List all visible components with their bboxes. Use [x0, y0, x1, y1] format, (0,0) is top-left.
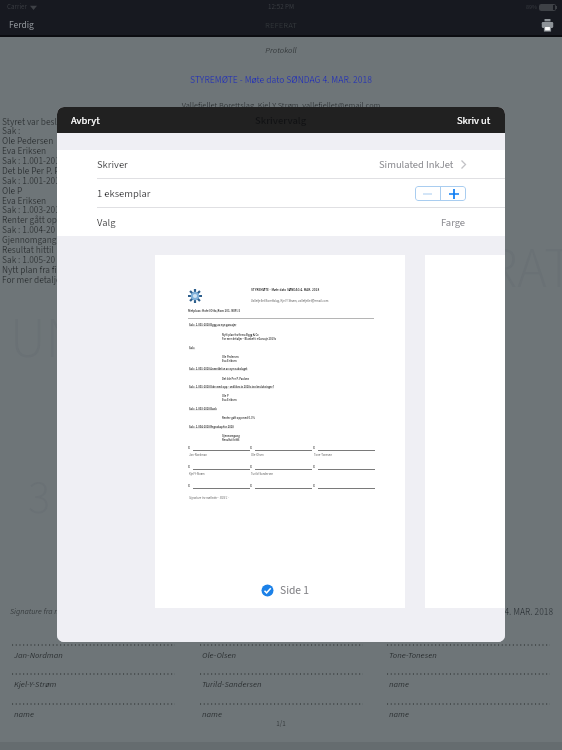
staticText: Sak : 1.004-20: [2, 223, 56, 236]
staticText: Sak : 1.001-201: [2, 154, 60, 167]
staticText: Sak :: [189, 346, 196, 350]
staticText: STYREMØTE - Møte dato SØNDAG 4. MAR. 201…: [251, 288, 320, 293]
staticText: Gjennomgang: [2, 233, 57, 246]
staticText: STYREMØTE - Møte dato SØNDAG 4. MAR. 201…: [0, 605, 553, 618]
staticText: Ole P: [2, 184, 23, 197]
staticText: Tone-Tonesen: [389, 649, 437, 661]
staticText: X: [313, 465, 315, 470]
staticText: X: [250, 446, 252, 451]
staticText: Ole-Olsen: [202, 649, 237, 661]
staticText: Jan-Nordman: [14, 649, 63, 661]
staticText: STYREMØTE - Møte dato SØNDAG 4. MAR. 201…: [0, 73, 562, 87]
staticText: Eva Eriksen: [222, 398, 237, 402]
staticText: Sak : 1.001-2018 Bygg av nye garasjer: [189, 323, 237, 327]
staticText: Gjennomgang: [222, 434, 240, 438]
staticText: Renter gått opp: [2, 213, 63, 226]
staticText: Det ble Per P. Paulsen: [222, 377, 250, 381]
staticText: Sak : 1.003-201: [2, 203, 60, 216]
button[interactable]: Avbryt: [57, 108, 114, 133]
staticText: Valg: [97, 215, 116, 230]
staticText: X: [188, 484, 190, 489]
staticText: Kjel-Y-Strøm: [189, 472, 205, 476]
staticText: Tone-Tonesen: [314, 453, 333, 457]
staticText: X: [250, 465, 252, 470]
staticText: 1 eksemplar: [97, 186, 151, 201]
staticText: Ole P: [222, 394, 229, 398]
staticText: Farge: [441, 215, 466, 230]
staticText: Vallefjellet Borettslag, Kjel Y Strøm, v…: [251, 299, 329, 304]
staticText: name: [202, 708, 223, 720]
staticText: 89%: [526, 3, 537, 12]
staticText: Avbryt: [71, 113, 100, 128]
staticText: Turild-Sandersen: [202, 678, 262, 690]
staticText: Eva Eriksen: [2, 144, 47, 157]
staticText: Simulated InkJet: [379, 157, 454, 172]
staticText: Resultat hittil: [2, 243, 54, 256]
button[interactable]: Decrease copies: [415, 186, 440, 201]
staticText: Sak : 1.004-2018 Regnskap for 2018: [189, 425, 234, 429]
staticText: REFERAT: [265, 19, 297, 31]
staticText: Det ble Per P. P: [2, 164, 60, 177]
button[interactable]: Valg: [57, 208, 505, 236]
staticText: Carrier: [7, 2, 28, 12]
staticText: Vallefjellet Borettslag, Kjel Y Strøm, v…: [0, 100, 562, 112]
button[interactable]: Print: [533, 19, 562, 31]
staticText: Renter gått opp med 0.3%: [222, 416, 255, 420]
staticText: Sak :: [2, 124, 21, 137]
staticText: Sak : 1.001-2018 Anmeldelse av nye nabol…: [189, 367, 248, 371]
staticText: Signature fra møtleder - SIDE 1 -: [189, 496, 230, 500]
staticText: REFERAT: [372, 230, 562, 310]
staticText: Metplass: Hotel Otto,Rom 101. WIFI-5: [188, 309, 241, 314]
staticText: Sak : 1.003-2018 Bank: [189, 407, 217, 411]
button[interactable]: Increase copies: [441, 186, 466, 201]
staticText: Skriver: [97, 157, 128, 172]
staticText: Styret var beslu: [2, 115, 62, 128]
staticText: Resultat hittil: [222, 438, 240, 442]
staticText: Sak : 1.001-2018 Ikke med opp - vedlikes…: [189, 385, 275, 389]
staticText: Signature fra møtleder - SIDE 1 -: [10, 606, 114, 617]
staticText: Eva Eriksen: [222, 359, 237, 363]
staticText: UNDERSKRIFT: [10, 300, 334, 380]
staticText: Side 1: [280, 582, 310, 598]
staticText: Skrivervalg: [255, 113, 307, 128]
staticText: Nytt plan fra fir: [2, 263, 60, 276]
staticText: Ferdig: [9, 18, 34, 32]
staticText: name: [14, 708, 35, 720]
staticText: Nytt plan fra firma Bygg & Co: [222, 333, 259, 337]
button[interactable]: Skriver: [57, 150, 505, 178]
staticText: Skriv ut: [457, 113, 491, 128]
staticText: For mer detalje: [2, 273, 61, 286]
staticText: Eva Eriksen: [2, 194, 47, 207]
button[interactable]: Skriv ut: [443, 108, 505, 133]
staticText: Kjel-Y-Strøm: [14, 678, 57, 690]
staticText: X: [250, 484, 252, 489]
staticText: name: [389, 678, 410, 690]
staticText: For mer detaljer - Blankett: eGarasje 20…: [222, 337, 276, 341]
staticText: X: [313, 484, 315, 489]
button[interactable]: 1 eksemplar: [57, 179, 505, 207]
staticText: Sak : 1.001-201: [2, 174, 60, 187]
staticText: X: [313, 446, 315, 451]
staticText: Ole Pedersen: [222, 355, 239, 359]
staticText: Turild-Sandersen: [251, 472, 274, 476]
staticText: 12:52 PM: [268, 2, 295, 12]
staticText: Sak : 1.005-20: [2, 253, 56, 266]
staticText: Protokoll: [0, 44, 562, 56]
staticText: Jan-Nordman: [189, 453, 207, 457]
staticText: name: [389, 708, 410, 720]
staticText: X: [188, 465, 190, 470]
staticText: X: [188, 446, 190, 451]
staticText: Ole Pedersen: [2, 134, 54, 147]
button[interactable]: Side 1: [261, 582, 310, 598]
staticText: Ole-Olsen: [251, 453, 264, 457]
button[interactable]: Ferdig: [0, 15, 43, 35]
